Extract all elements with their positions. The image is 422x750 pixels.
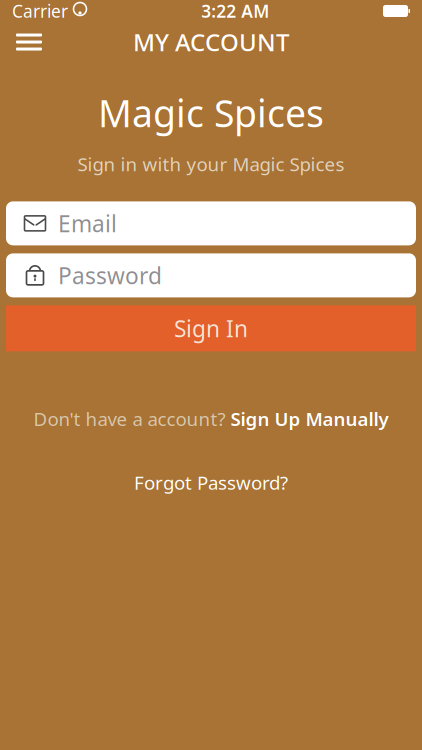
staticText: Email xyxy=(58,208,117,238)
staticText: Carrier xyxy=(12,0,68,22)
button[interactable]: Password xyxy=(6,253,416,297)
staticText: Sign Up Manually xyxy=(230,406,388,431)
staticText: Magic Spices xyxy=(98,88,324,138)
staticText: Password xyxy=(58,260,162,290)
staticText: Don't have a account? xyxy=(33,406,225,431)
button[interactable]: Forgot Password? xyxy=(124,464,298,501)
staticText: Forgot Password? xyxy=(134,470,288,495)
button[interactable]: Don't have a account? xyxy=(23,400,398,437)
staticText: Sign In xyxy=(174,313,248,343)
staticText: 3:22 AM xyxy=(201,0,269,22)
button[interactable]: Email xyxy=(6,201,416,245)
button[interactable]: Menu xyxy=(6,23,52,60)
staticText: MY ACCOUNT xyxy=(133,26,289,58)
button[interactable]: Sign In xyxy=(6,305,416,351)
staticText: Sign in with your Magic Spices xyxy=(77,152,344,176)
